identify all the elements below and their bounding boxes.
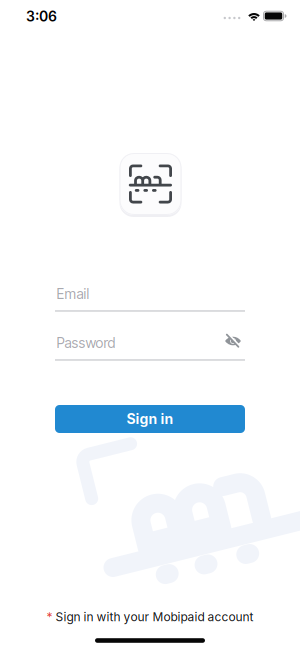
button[interactable]: Password: [55, 334, 245, 360]
staticText: Sign in with your Mobipaid account: [55, 610, 253, 624]
staticText: Sign in: [126, 410, 173, 427]
button[interactable]: Sign in: [55, 405, 245, 433]
staticText: 3:06: [26, 8, 57, 25]
staticText: Password: [56, 334, 115, 351]
button[interactable]: Email: [55, 285, 245, 311]
staticText: Email: [56, 285, 89, 302]
button[interactable]: Show password: [224, 333, 242, 349]
staticText: *: [46, 610, 52, 624]
